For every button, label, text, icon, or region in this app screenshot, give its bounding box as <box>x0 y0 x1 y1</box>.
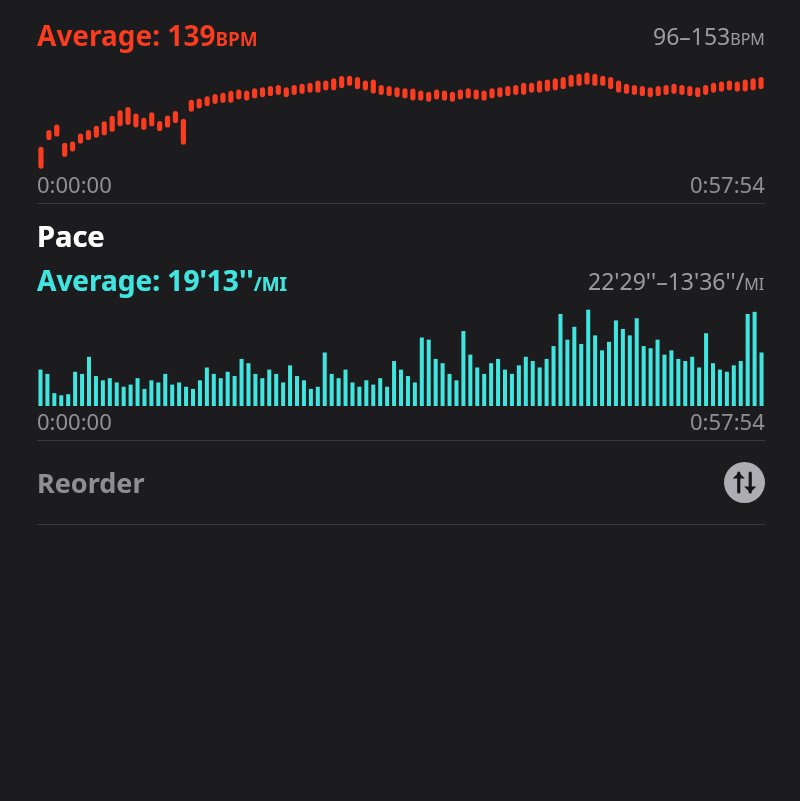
staticText: 0:00:00 <box>37 406 112 436</box>
button[interactable]: Pace <box>37 216 105 255</box>
button[interactable]: Reorder <box>724 462 765 503</box>
staticText: Average: 19'13''/MI <box>37 261 287 299</box>
staticText: Reorder <box>37 464 145 501</box>
staticText: 0:00:00 <box>37 169 112 199</box>
staticText: Average: 139BPM <box>37 16 258 54</box>
button[interactable]: Reorder <box>0 441 800 524</box>
staticText: 22'29''–13'36''/MI <box>588 265 765 296</box>
staticText: 0:57:54 <box>690 169 765 199</box>
staticText: 96–153BPM <box>653 20 765 51</box>
staticText: 0:57:54 <box>690 406 765 436</box>
